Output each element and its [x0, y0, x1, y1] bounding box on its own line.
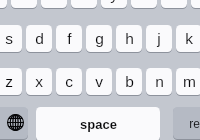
staticText: v	[95, 73, 103, 90]
button[interactable]: y	[101, 0, 127, 8]
button[interactable]: k	[176, 25, 200, 52]
button[interactable]: n	[146, 68, 172, 95]
staticText: h	[125, 30, 134, 47]
button[interactable]: z	[0, 68, 22, 95]
staticText: c	[65, 73, 73, 90]
button[interactable]: s	[0, 25, 22, 52]
button[interactable]: m	[176, 68, 200, 95]
staticText: j	[157, 30, 161, 47]
button[interactable]: b	[116, 68, 142, 95]
button[interactable]: return	[173, 107, 200, 139]
staticText: space	[80, 117, 117, 132]
button[interactable]: space	[36, 107, 160, 140]
staticText: f	[67, 30, 72, 47]
staticText: b	[125, 73, 134, 90]
button[interactable]: h	[116, 25, 142, 52]
button[interactable]: d	[26, 25, 52, 52]
button[interactable]: g	[86, 25, 112, 52]
button[interactable]: v	[86, 68, 112, 95]
button[interactable]: x	[26, 68, 52, 95]
button[interactable]: e	[11, 0, 37, 8]
button[interactable]: u	[131, 0, 157, 8]
button[interactable]: Next keyboard	[0, 107, 28, 139]
staticText: k	[185, 30, 193, 47]
button[interactable]: w	[0, 0, 7, 8]
staticText: y	[110, 0, 118, 3]
staticText: d	[35, 30, 44, 47]
button[interactable]: c	[56, 68, 82, 95]
staticText: x	[35, 73, 43, 90]
button[interactable]: j	[146, 25, 172, 52]
button[interactable]: t	[71, 0, 97, 8]
staticText: z	[5, 73, 13, 90]
staticText: return	[189, 117, 200, 130]
button[interactable]: i	[161, 0, 187, 8]
staticText: n	[155, 73, 164, 90]
staticText: m	[183, 73, 196, 90]
button[interactable]: f	[56, 25, 82, 52]
staticText: s	[5, 30, 13, 47]
button[interactable]: o	[191, 0, 200, 8]
staticText: g	[95, 30, 104, 47]
button[interactable]: r	[41, 0, 67, 8]
